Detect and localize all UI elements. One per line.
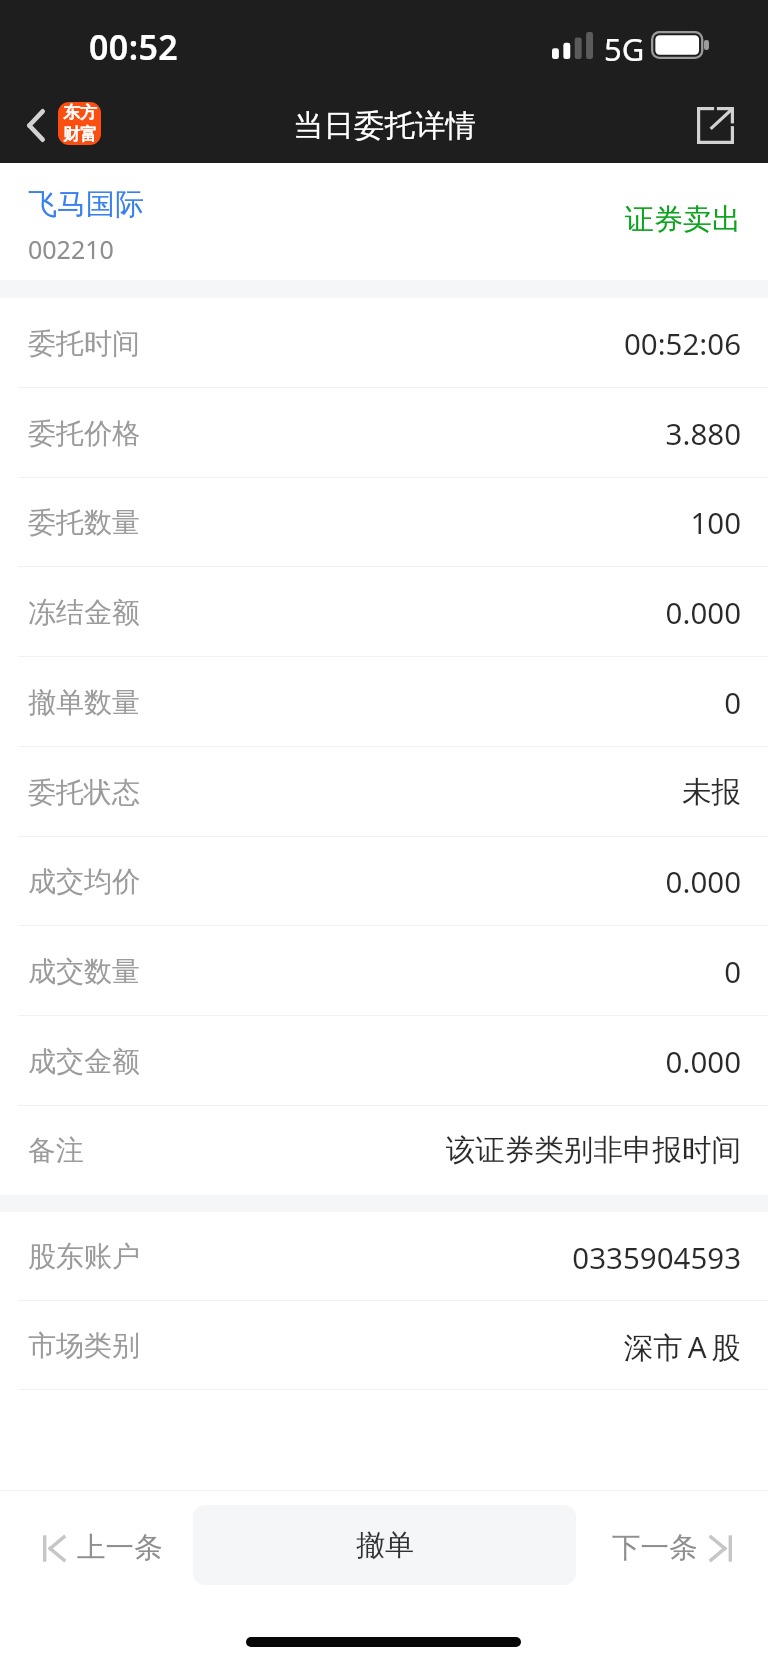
staticText: 下一条 (612, 1530, 698, 1566)
staticText: 冻结金额 (28, 595, 140, 630)
staticText: 委托时间 (28, 326, 140, 361)
staticText: 撤单 (356, 1527, 414, 1564)
button[interactable]: 成交均价 (0, 836, 768, 926)
staticText: 0 (148, 951, 741, 991)
button[interactable]: 股东账户 (0, 1212, 768, 1301)
staticText: 当日委托详情 (293, 107, 476, 145)
staticText: 成交数量 (28, 954, 140, 989)
button[interactable]: 撤单数量 (0, 657, 768, 747)
staticText: 备注 (28, 1133, 84, 1168)
staticText: 成交均价 (28, 864, 140, 899)
staticText: 证券卖出 (625, 201, 741, 238)
button[interactable]: 委托时间 (0, 298, 768, 388)
staticText: 100 (148, 502, 741, 542)
staticText: 0.000 (148, 592, 741, 632)
staticText: 东方 (63, 102, 97, 123)
button[interactable]: 市场类别 (0, 1301, 768, 1390)
button[interactable]: Share (683, 93, 747, 157)
button[interactable]: East Money home (58, 102, 101, 145)
button[interactable]: 委托价格 (0, 388, 768, 478)
button[interactable]: 委托数量 (0, 477, 768, 567)
button[interactable]: 下一条 (576, 1492, 768, 1604)
staticText: 委托价格 (28, 416, 140, 451)
staticText: 飞马国际 (28, 186, 144, 223)
staticText: 002210 (28, 232, 114, 266)
staticText: 0.000 (148, 1041, 741, 1081)
button[interactable]: 飞马国际 (10, 175, 200, 270)
staticText: 0.000 (148, 861, 741, 901)
staticText: 0 (148, 682, 741, 722)
button[interactable]: 委托状态 (0, 747, 768, 837)
staticText: 00:52:06 (148, 323, 741, 363)
staticText: 5G (604, 28, 645, 70)
staticText: 未报 (148, 774, 741, 811)
staticText: 上一条 (77, 1530, 163, 1566)
staticText: 市场类别 (28, 1328, 140, 1363)
staticText: 股东账户 (28, 1239, 140, 1274)
staticText: 该证券类别非申报时间 (92, 1132, 741, 1169)
button[interactable]: 备注 (0, 1105, 768, 1195)
button[interactable]: Back (4, 93, 68, 157)
staticText: 3.880 (148, 413, 741, 453)
button[interactable]: 冻结金额 (0, 567, 768, 657)
staticText: 00:52 (89, 24, 179, 70)
staticText: 委托数量 (28, 505, 140, 540)
button[interactable]: 成交金额 (0, 1016, 768, 1106)
staticText: 撤单数量 (28, 685, 140, 720)
staticText: 成交金额 (28, 1044, 140, 1079)
button[interactable]: 上一条 (0, 1492, 193, 1604)
staticText: 深市 A 股 (148, 1326, 741, 1366)
staticText: 0335904593 (148, 1237, 741, 1277)
button[interactable]: 成交数量 (0, 926, 768, 1016)
button[interactable]: 撤单 (193, 1505, 576, 1585)
staticText: 委托状态 (28, 775, 140, 810)
staticText: 财富 (63, 124, 97, 145)
